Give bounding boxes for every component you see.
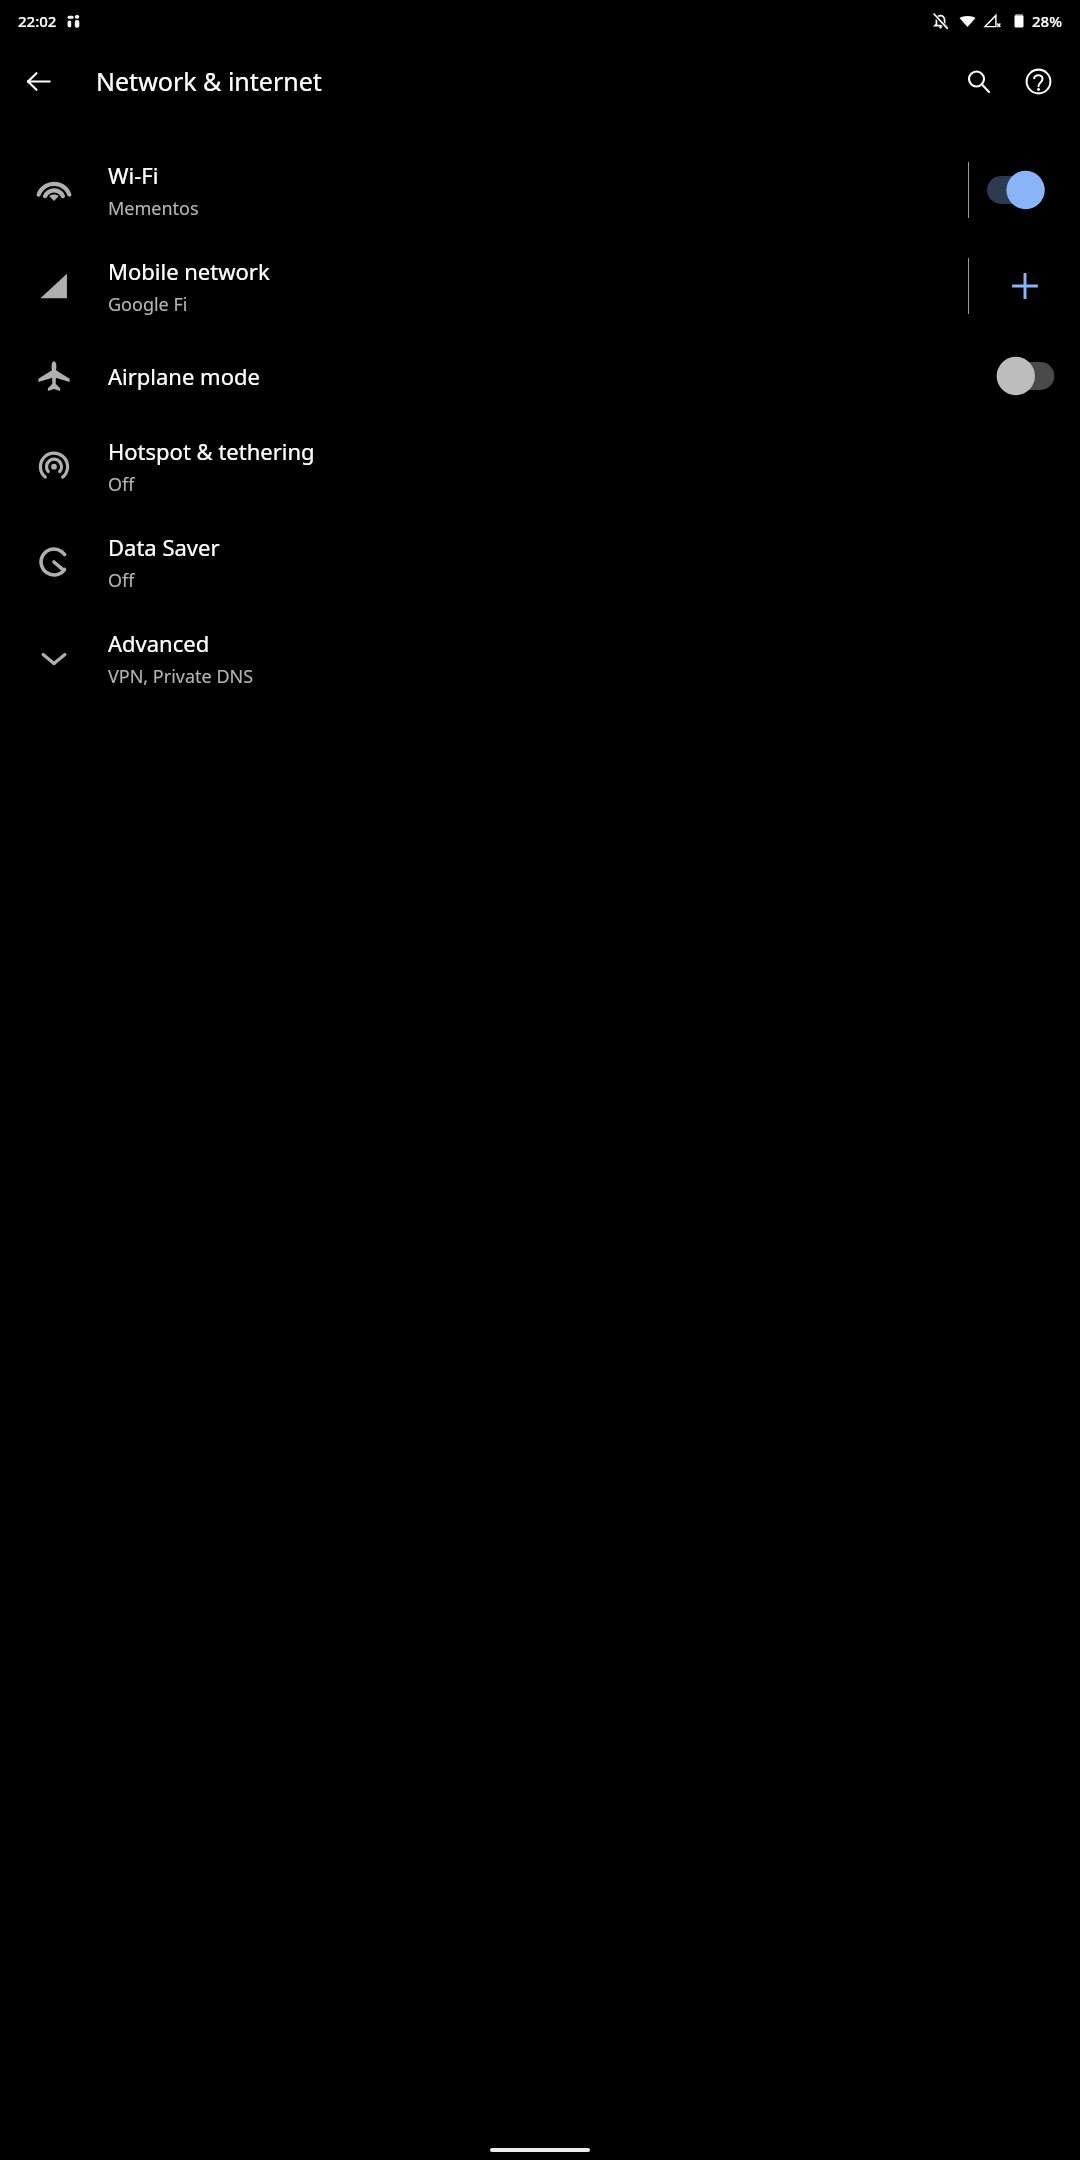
staticText: Off <box>108 472 135 497</box>
staticText: Mobile network <box>108 256 270 286</box>
staticText: Airplane mode <box>108 361 260 391</box>
staticText: Advanced <box>108 628 210 658</box>
staticText: Network & internet <box>96 64 322 98</box>
button[interactable]: Airplane mode <box>0 334 1080 418</box>
button[interactable]: Help <box>1010 53 1066 109</box>
button[interactable]: Search <box>950 53 1006 109</box>
staticText: Mementos <box>108 196 199 221</box>
staticText: VPN, Private DNS <box>108 664 254 689</box>
staticText: Wi-Fi <box>108 160 159 190</box>
staticText: 28% <box>1032 11 1062 31</box>
button[interactable]: Back <box>10 53 66 109</box>
button[interactable]: Mobile network <box>0 238 1080 334</box>
staticText: 22:02 <box>18 11 57 31</box>
button[interactable]: Add network <box>993 254 1057 318</box>
button[interactable]: Hotspot & tethering <box>0 418 1080 514</box>
button[interactable]: Wi-Fi <box>0 142 1080 238</box>
staticText: Hotspot & tethering <box>108 436 315 466</box>
staticText: Data Saver <box>108 532 220 562</box>
staticText: Off <box>108 568 135 593</box>
button[interactable]: Toggle on <box>987 166 1063 214</box>
staticText: Google Fi <box>108 292 188 317</box>
button[interactable]: Data Saver <box>0 514 1080 610</box>
button[interactable]: Toggle off <box>986 352 1062 400</box>
button[interactable]: Advanced <box>0 610 1080 706</box>
